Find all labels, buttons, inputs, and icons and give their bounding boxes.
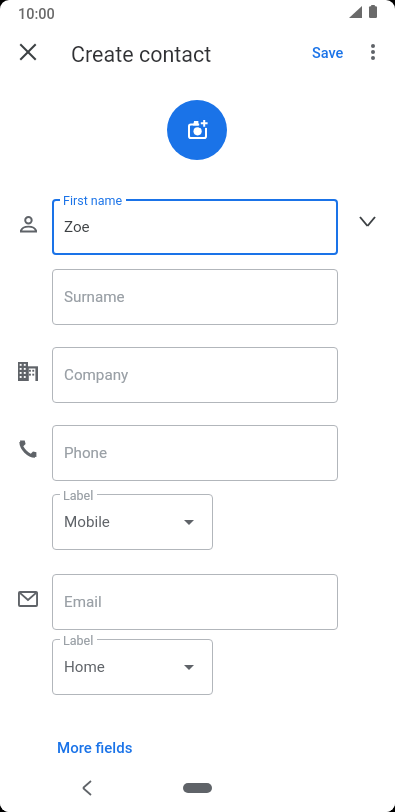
button[interactable]: Label [52,494,213,550]
staticText: Create contact [71,42,212,67]
button[interactable]: Company [52,347,338,403]
staticText: Home [64,658,105,676]
button[interactable]: More fields [51,734,139,762]
button[interactable]: Close [12,36,44,68]
staticText: Surname [64,288,125,306]
staticText: Company [64,366,129,384]
button[interactable]: Back [67,768,107,808]
button[interactable]: Save [304,41,352,66]
button[interactable]: Expand name fields [348,199,386,243]
button[interactable]: First name [52,199,338,255]
button[interactable]: Email [52,574,338,630]
staticText: Save [312,45,344,62]
button[interactable]: Label [52,639,213,695]
staticText: Email [64,593,102,611]
button[interactable]: Surname [52,269,338,325]
button[interactable]: Add photo [167,100,227,160]
staticText: Label [63,488,94,503]
staticText: 10:00 [18,6,55,23]
button[interactable]: Phone [52,425,338,481]
button[interactable]: More options [355,34,391,70]
staticText: First name [63,193,123,208]
staticText: Zoe [64,218,90,236]
staticText: Mobile [64,513,110,531]
button[interactable]: Home [183,783,212,793]
staticText: Label [63,633,94,648]
staticText: More fields [57,739,133,757]
staticText: Phone [64,444,108,462]
